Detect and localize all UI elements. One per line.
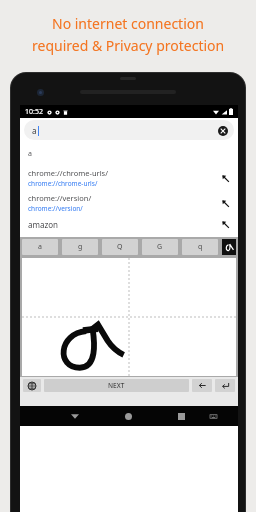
button[interactable]: Home	[120, 408, 136, 424]
button[interactable]: Handwriting input area	[22, 258, 236, 376]
button[interactable]: Clear	[218, 126, 228, 136]
button[interactable]: a	[22, 239, 58, 255]
staticText: a	[28, 149, 32, 159]
staticText: amazon	[28, 219, 58, 230]
staticText: NEXT	[108, 381, 125, 390]
button[interactable]: Q	[102, 239, 138, 255]
button[interactable]: Recents	[173, 408, 189, 424]
button[interactable]: a	[24, 120, 234, 140]
staticText: Q	[117, 242, 123, 252]
button[interactable]: Change keyboard	[23, 379, 41, 392]
staticText: No internet connection	[52, 14, 204, 33]
button[interactable]: Keyboard	[206, 409, 220, 423]
staticText: g	[78, 242, 83, 252]
staticText: a	[32, 125, 37, 136]
staticText: q	[198, 242, 203, 252]
staticText: chrome://chrome-urls/	[28, 179, 98, 188]
button[interactable]: chrome://version/	[20, 193, 238, 213]
staticText: 10:52	[25, 107, 43, 117]
button[interactable]: Fill suggestion	[221, 220, 230, 229]
staticText: a	[38, 242, 42, 252]
button[interactable]: chrome://chrome-urls/	[20, 168, 238, 188]
staticText: chrome://chrome-urls/	[28, 168, 108, 178]
button[interactable]: Back	[67, 408, 83, 424]
button[interactable]: Fill suggestion	[221, 199, 230, 208]
button[interactable]: Handwriting mode	[222, 239, 236, 255]
button[interactable]: amazon	[20, 218, 238, 230]
button[interactable]: q	[182, 239, 218, 255]
staticText: chrome://version/	[28, 204, 83, 213]
staticText: chrome://version/	[28, 193, 92, 203]
button[interactable]: g	[62, 239, 98, 255]
button[interactable]: Enter	[215, 379, 235, 392]
button[interactable]: G	[142, 239, 178, 255]
button[interactable]: Fill suggestion	[221, 174, 230, 183]
button[interactable]: a	[20, 145, 238, 162]
staticText: G	[157, 242, 163, 252]
button[interactable]: Backspace	[192, 379, 212, 392]
button[interactable]: NEXT	[44, 379, 189, 392]
staticText: required & Privacy protection	[32, 36, 225, 55]
